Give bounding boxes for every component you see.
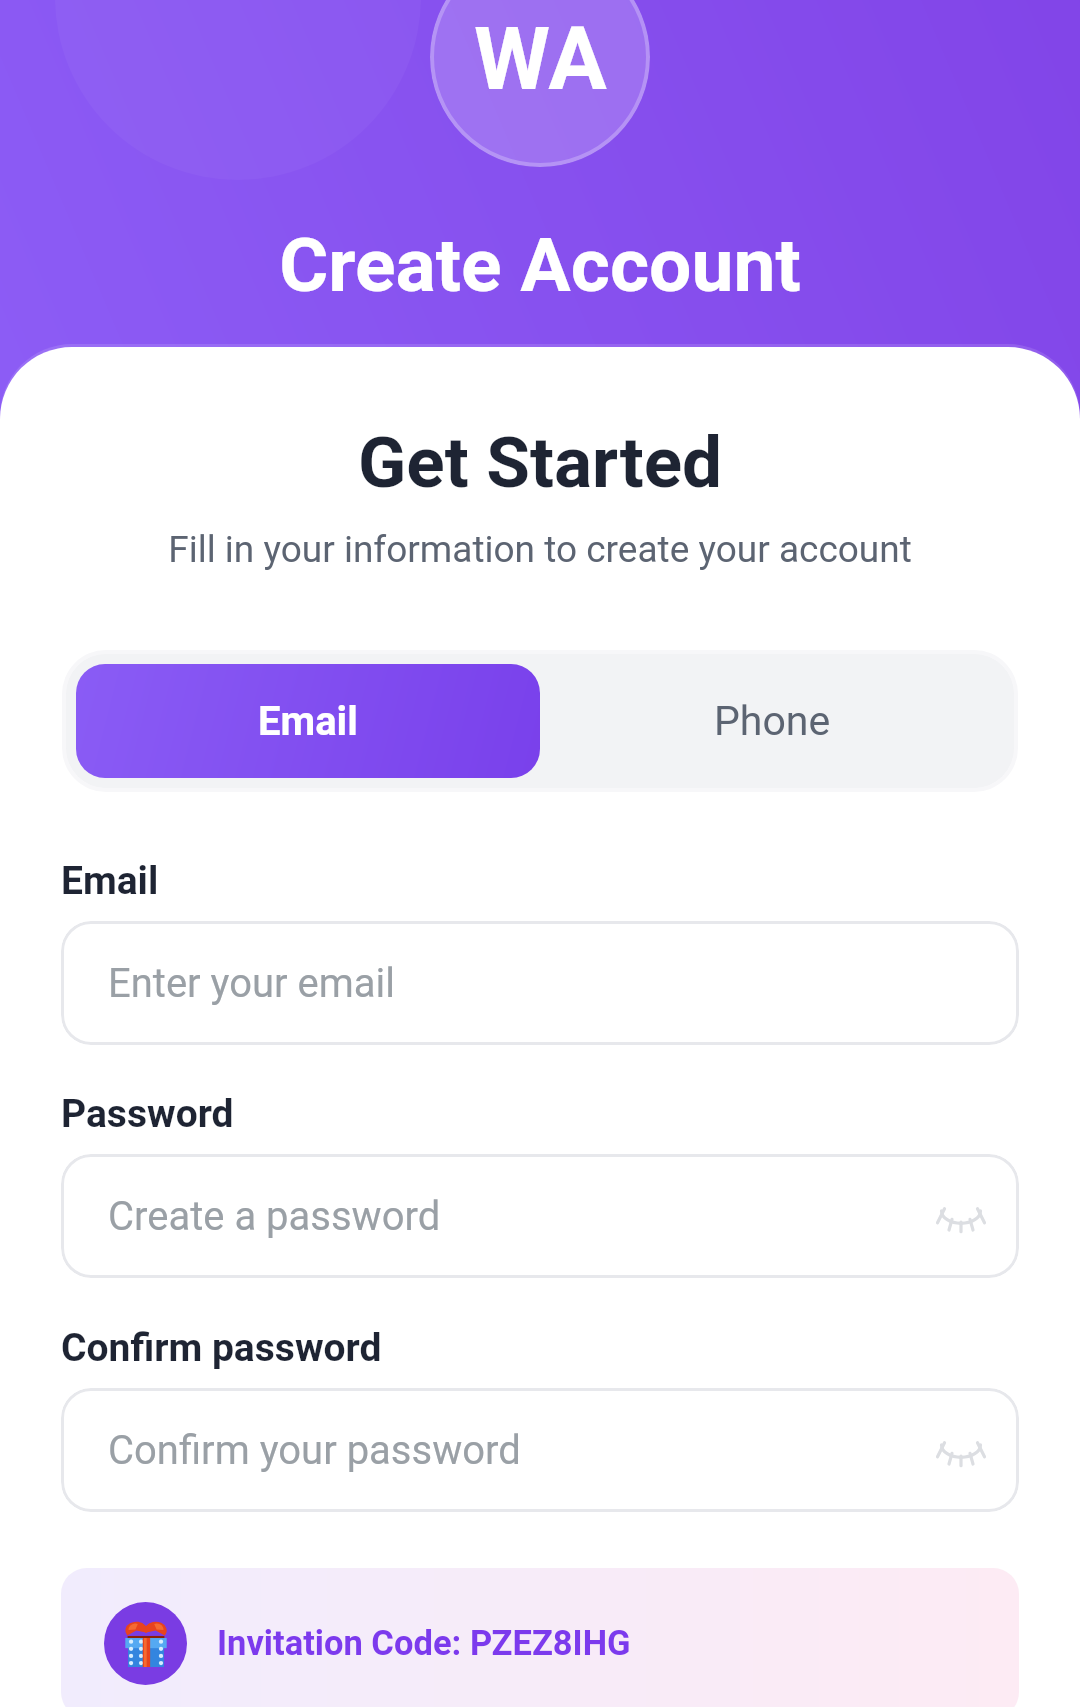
- button[interactable]: Show password: [928, 1417, 994, 1483]
- staticText: Confirm your password: [108, 1427, 521, 1474]
- staticText: Confirm password: [61, 1325, 382, 1371]
- button[interactable]: Show password: [928, 1183, 994, 1249]
- staticText: WA: [474, 8, 607, 110]
- staticText: Email: [258, 698, 358, 745]
- button[interactable]: Confirm your password: [61, 1388, 1019, 1512]
- staticText: Invitation Code: PZEZ8IHG: [217, 1623, 631, 1663]
- button[interactable]: Enter your email: [61, 921, 1019, 1045]
- button[interactable]: Invitation Code: PZEZ8IHG: [61, 1568, 1019, 1707]
- staticText: Phone: [714, 697, 831, 745]
- staticText: Create Account: [0, 221, 1080, 309]
- staticText: Create a password: [108, 1193, 441, 1240]
- button[interactable]: Email: [76, 664, 540, 778]
- staticText: Get Started: [0, 421, 1080, 504]
- button[interactable]: Phone: [540, 664, 1004, 778]
- staticText: Email: [61, 858, 159, 904]
- button[interactable]: Create a password: [61, 1154, 1019, 1278]
- staticText: Enter your email: [108, 960, 396, 1007]
- staticText: Password: [61, 1091, 234, 1137]
- staticText: Fill in your information to create your …: [0, 528, 1080, 571]
